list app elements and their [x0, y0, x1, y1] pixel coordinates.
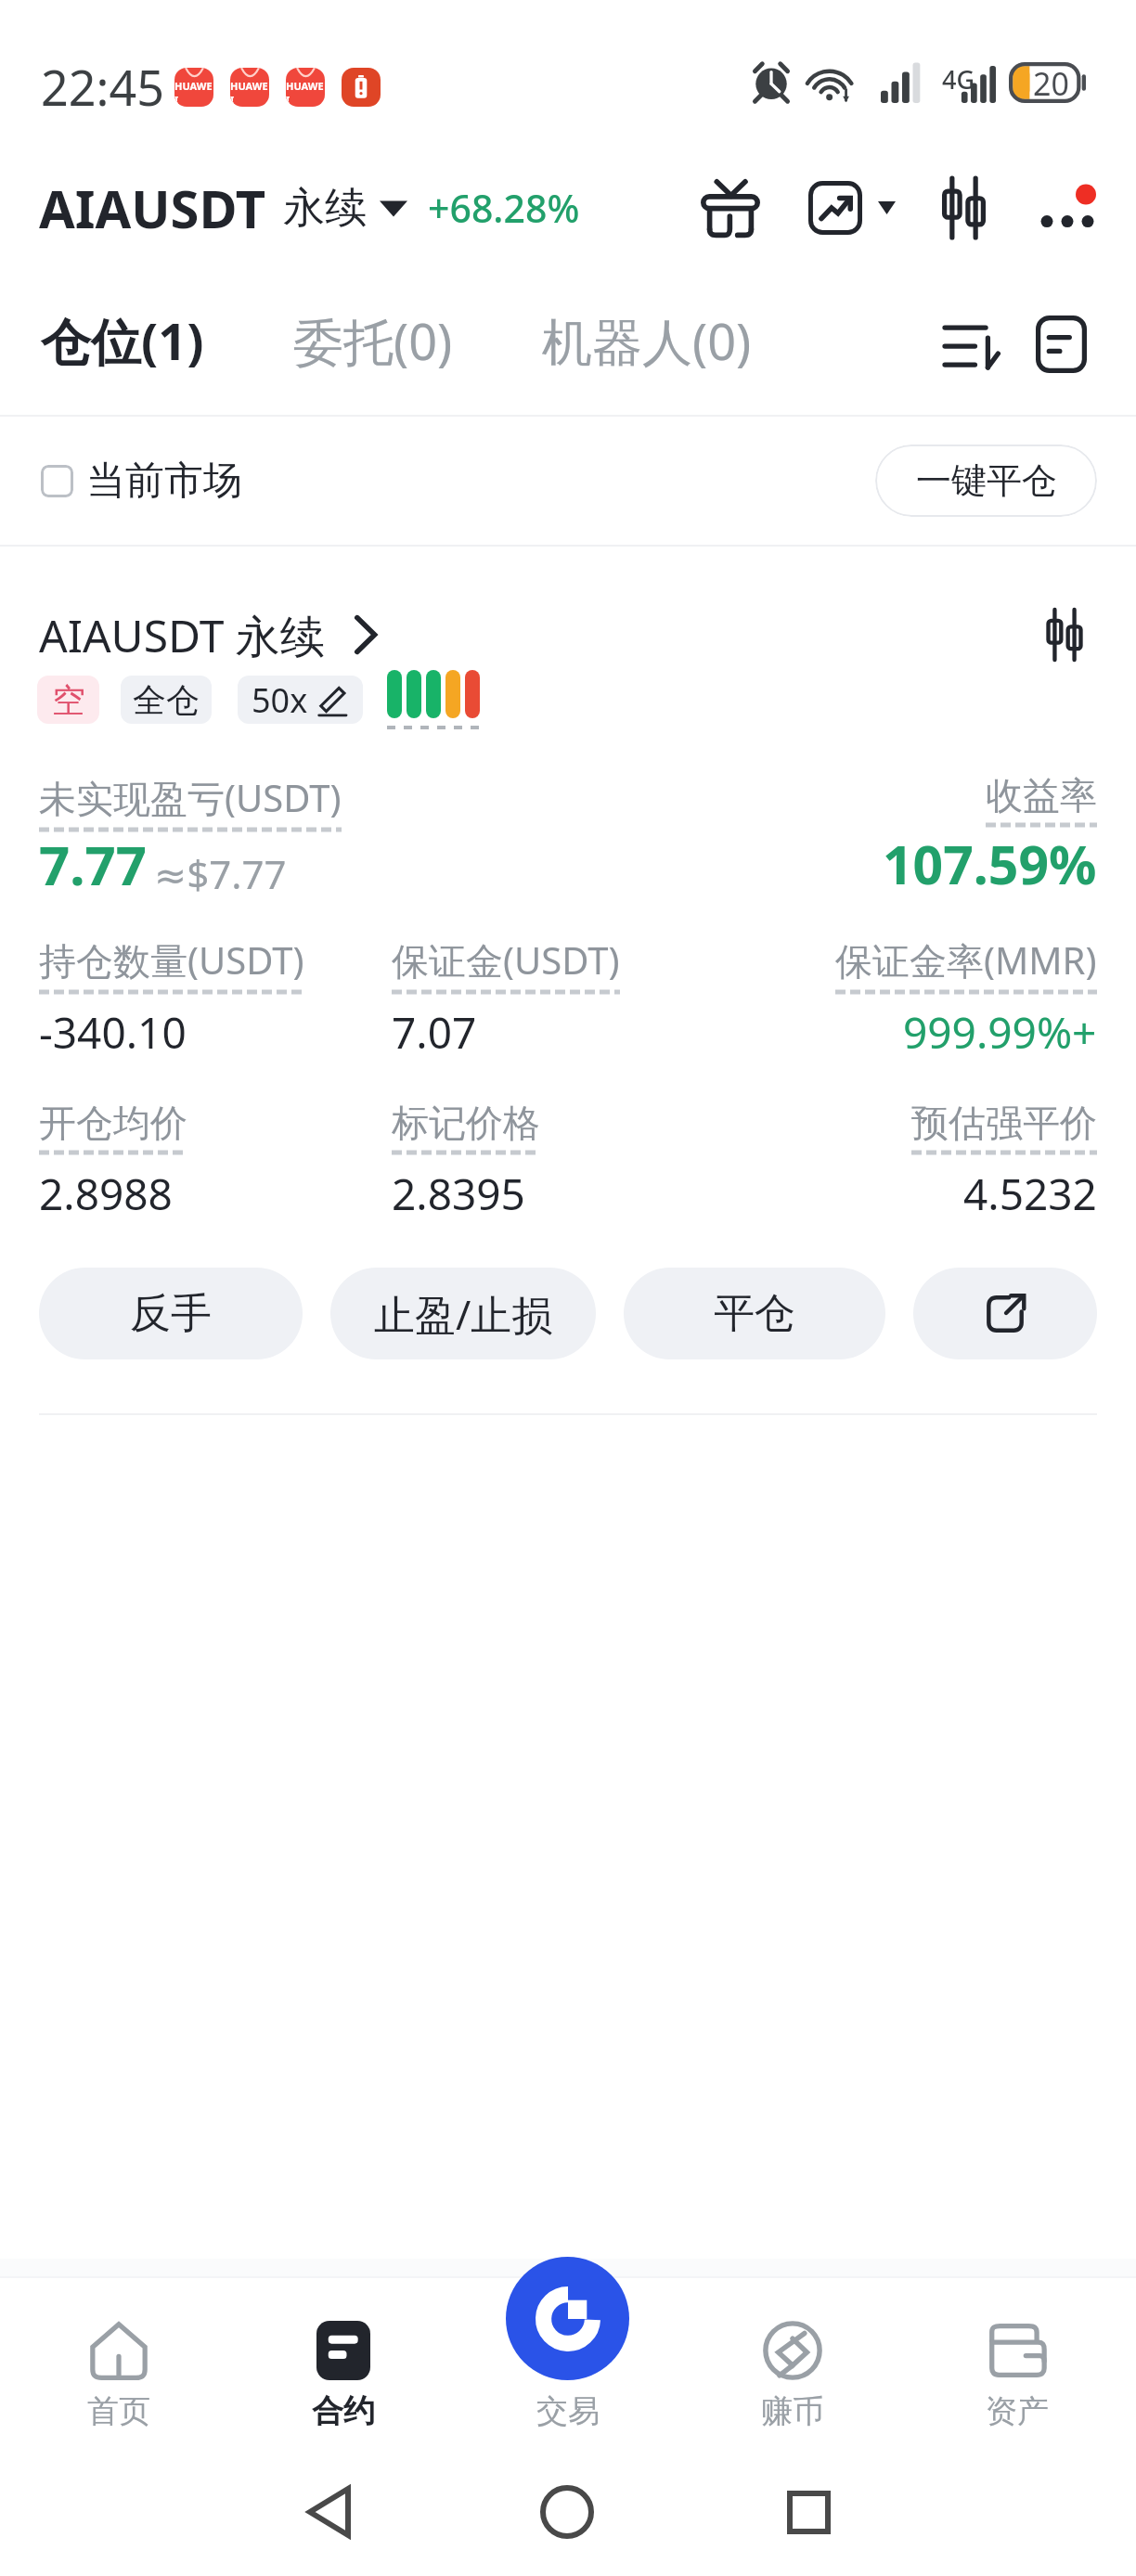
- button[interactable]: Trade: [506, 2257, 629, 2380]
- button[interactable]: 一键平仓: [875, 444, 1097, 517]
- staticText: HUAWEI: [230, 79, 269, 107]
- button[interactable]: 反手: [39, 1268, 303, 1359]
- button[interactable]: Home: [504, 2464, 630, 2560]
- button[interactable]: AIAUSDT: [39, 173, 580, 243]
- button[interactable]: 合约: [231, 2290, 456, 2467]
- button[interactable]: 仓位(1): [41, 285, 204, 396]
- button[interactable]: Order history: [1023, 306, 1099, 382]
- staticText: 4.5232: [963, 1165, 1097, 1223]
- staticText: AIAUSDT: [39, 173, 266, 243]
- staticText: ≈$7.77: [154, 847, 287, 900]
- staticText: 未实现盈亏(USDT): [39, 772, 342, 823]
- staticText: 永续: [283, 182, 367, 235]
- staticText: 空: [52, 679, 85, 721]
- staticText: 预估强平价: [911, 1100, 1097, 1146]
- staticText: AIAUSDT 永续: [39, 605, 325, 664]
- staticText: 仓位(1): [41, 306, 204, 375]
- button[interactable]: 止盈/止损: [330, 1268, 596, 1359]
- button[interactable]: Open chart: [1032, 602, 1097, 667]
- staticText: 首页: [87, 2391, 150, 2431]
- staticText: 107.59%: [883, 828, 1097, 900]
- staticText: 7.07: [392, 1003, 477, 1062]
- button[interactable]: 机器人(0): [542, 285, 752, 396]
- button[interactable]: 当前市场: [41, 439, 242, 522]
- staticText: 4G: [942, 62, 975, 97]
- staticText: 50x: [252, 677, 308, 723]
- button[interactable]: Rewards: [691, 168, 770, 248]
- button[interactable]: 委托(0): [293, 285, 453, 396]
- staticText: 22:45: [41, 54, 164, 120]
- staticText: 平仓: [714, 1288, 795, 1339]
- staticText: 一键平仓: [916, 458, 1057, 503]
- button[interactable]: 50x: [238, 676, 363, 724]
- staticText: 2.8988: [39, 1165, 173, 1223]
- staticText: HUAWEI: [174, 79, 213, 107]
- staticText: HUAWEI: [286, 79, 325, 107]
- staticText: 7.77: [39, 828, 147, 901]
- staticText: 标记价格: [392, 1100, 540, 1146]
- button[interactable]: More options: [1038, 168, 1103, 248]
- button[interactable]: 赚币: [680, 2290, 905, 2467]
- staticText: +68.28%: [428, 182, 580, 234]
- button[interactable]: Recent apps: [745, 2464, 871, 2560]
- button[interactable]: 首页: [6, 2290, 231, 2467]
- staticText: 机器人(0): [542, 306, 752, 375]
- button[interactable]: Back: [265, 2464, 392, 2560]
- button[interactable]: Candlestick: [938, 168, 989, 248]
- button[interactable]: Chart type: [808, 168, 896, 248]
- button[interactable]: 平仓: [624, 1268, 885, 1359]
- staticText: 持仓数量(USDT): [39, 934, 304, 985]
- staticText: -340.10: [39, 1003, 187, 1062]
- staticText: 委托(0): [293, 306, 453, 375]
- staticText: 999.99%+: [903, 1003, 1097, 1062]
- button[interactable]: Share position: [913, 1268, 1097, 1359]
- staticText: 保证金(USDT): [392, 934, 620, 985]
- button[interactable]: AIAUSDT 永续: [39, 605, 376, 664]
- staticText: 收益率: [986, 772, 1097, 818]
- staticText: 当前市场: [86, 457, 242, 506]
- staticText: 反手: [130, 1288, 212, 1339]
- staticText: 赚币: [761, 2391, 824, 2431]
- staticText: 资产: [986, 2391, 1049, 2431]
- button[interactable]: 资产: [905, 2290, 1130, 2467]
- button[interactable]: Sort: [934, 308, 1010, 384]
- staticText: 合约: [312, 2391, 375, 2431]
- staticText: 止盈/止损: [374, 1286, 553, 1342]
- button[interactable]: 交易: [456, 2290, 680, 2467]
- staticText: 保证金率(MMR): [835, 934, 1097, 985]
- staticText: 交易: [536, 2391, 600, 2431]
- staticText: 开仓均价: [39, 1100, 187, 1146]
- staticText: 全仓: [133, 679, 200, 721]
- staticText: 2.8395: [392, 1165, 525, 1223]
- staticText: 20: [1033, 62, 1069, 103]
